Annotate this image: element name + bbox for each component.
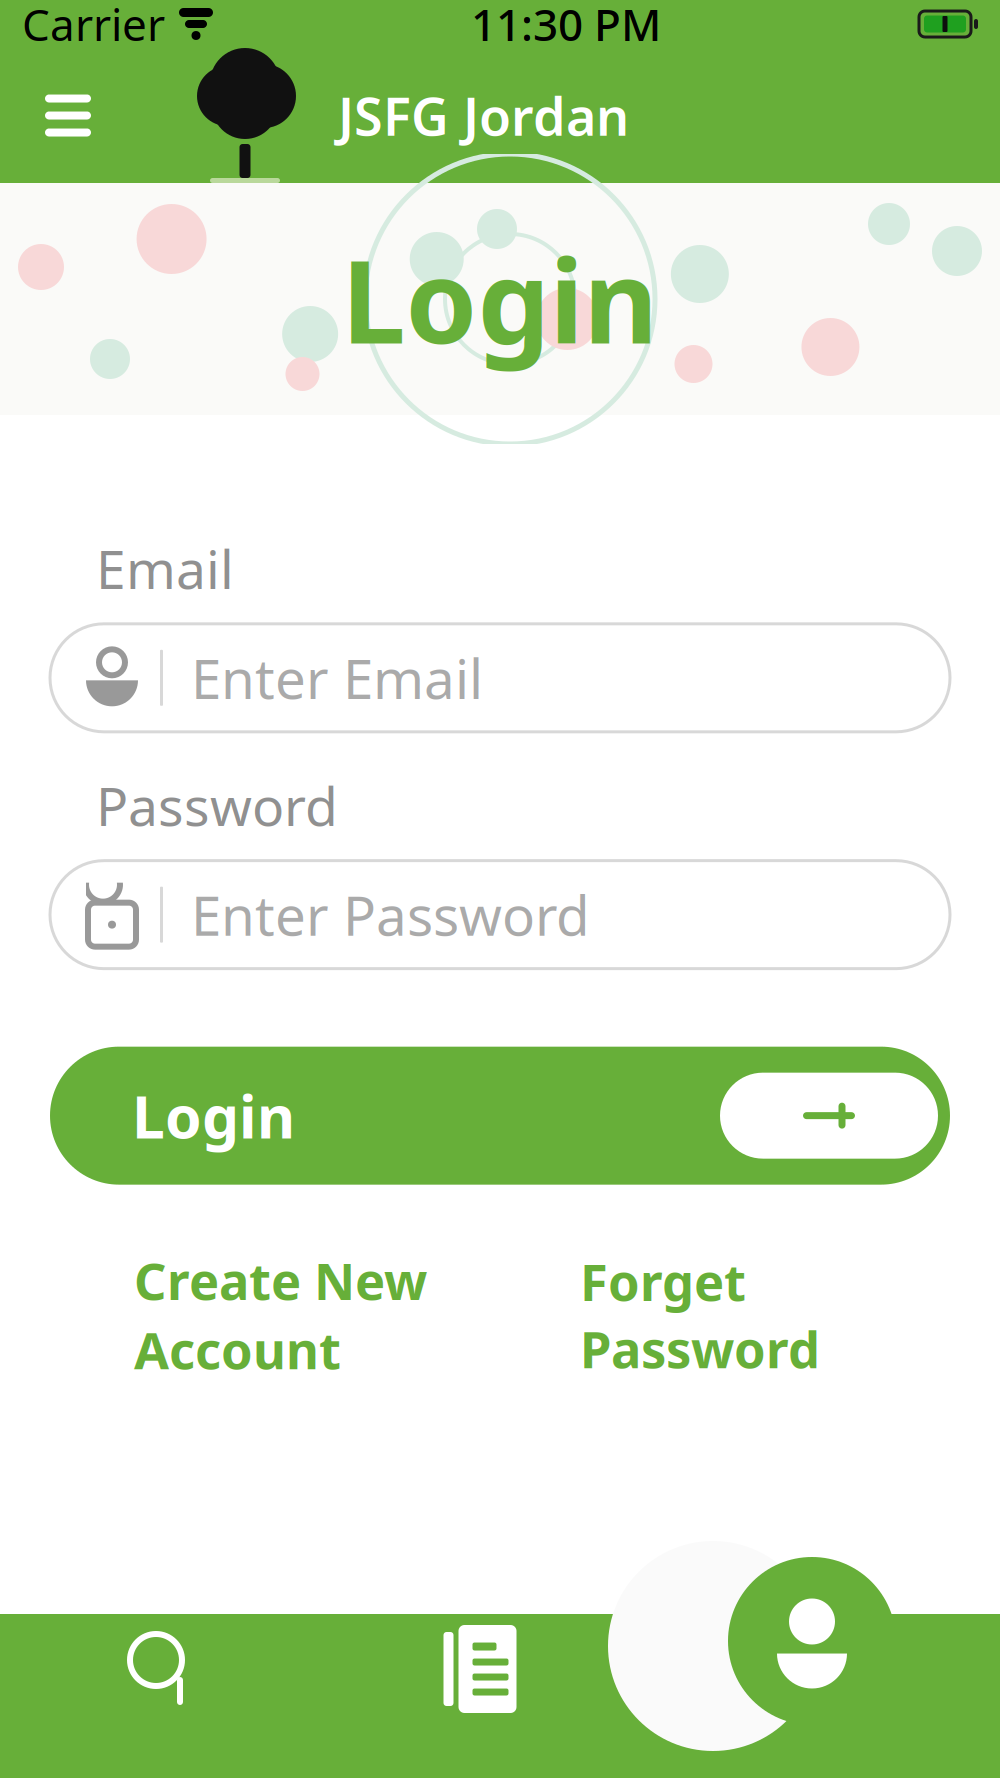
staticText: Login [132,1077,295,1155]
staticText: Create New [134,1247,427,1314]
button[interactable]: Enter Email [50,624,950,732]
staticText: Enter Password [191,878,590,951]
button[interactable]: Forget Password [580,1248,820,1382]
button[interactable]: News [395,1587,565,1751]
staticText: Login [341,223,658,375]
staticText: Enter Email [191,641,483,714]
button[interactable]: Enter Password [50,861,950,969]
staticText: JSFG Jordan [338,81,629,150]
button[interactable]: Search [78,1587,248,1751]
staticText: Password [96,770,338,841]
staticText: Carrier [22,0,165,53]
staticText: Forget Password [580,1248,820,1382]
button[interactable]: Create New [134,1247,434,1383]
button[interactable]: Login [50,1047,950,1185]
button[interactable]: Menu [22,69,114,161]
button[interactable]: Profile [712,1541,912,1741]
staticText: 11:30 PM [471,0,661,53]
staticText: Account [134,1316,341,1383]
staticText: Email [96,533,234,604]
